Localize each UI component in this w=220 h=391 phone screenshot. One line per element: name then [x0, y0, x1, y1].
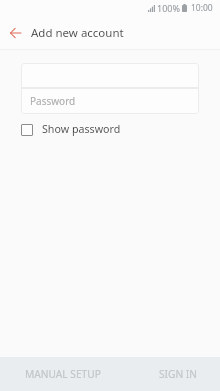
button[interactable]: Password: [21, 88, 199, 114]
button[interactable]: [21, 63, 199, 88]
staticText: MANUAL SETUP: [25, 367, 101, 381]
button[interactable]: MANUAL SETUP: [0, 357, 110, 391]
button[interactable]: Show password: [21, 122, 121, 137]
staticText: SIGN IN: [159, 367, 198, 381]
button[interactable]: Navigate up: [4, 21, 27, 44]
staticText: 10:00: [191, 2, 213, 14]
staticText: Add new account: [31, 25, 124, 41]
staticText: Show password: [42, 122, 121, 137]
staticText: 100%: [157, 2, 180, 14]
button[interactable]: SIGN IN: [110, 357, 220, 391]
staticText: Password: [30, 94, 76, 108]
